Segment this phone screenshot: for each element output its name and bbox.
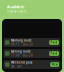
staticText: 08:15 · Bus 24 — [11, 43, 33, 46]
button[interactable]: Morning route — [3, 38, 60, 47]
staticText: Morning route — [11, 39, 32, 42]
staticText: Paid — [51, 41, 58, 44]
staticText: Sat – Sun — [11, 65, 22, 68]
staticText: 17:40 · Bus 24 — [11, 54, 33, 57]
button[interactable]: Weekend pass — [3, 60, 60, 69]
staticText: Evening route — [11, 50, 31, 53]
staticText: Paid — [51, 52, 58, 55]
staticText: Available — [7, 4, 24, 9]
staticText: Weekend pass — [11, 61, 32, 64]
staticText: New — [52, 63, 58, 66]
button[interactable]: Evening route — [3, 49, 60, 58]
staticText: View all tickets — [7, 10, 26, 13]
